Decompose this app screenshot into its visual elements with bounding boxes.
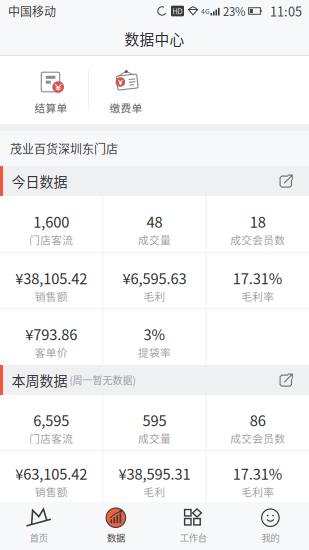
staticText: ¥63,105.42 (15, 463, 87, 484)
staticText: 门店客流 (29, 430, 73, 446)
staticText: HD (172, 6, 182, 16)
button[interactable]: 缴费单 (89, 56, 163, 124)
staticText: ¥38,105.42 (15, 267, 87, 288)
staticText: 数据 (107, 531, 125, 544)
button[interactable]: 工作台 (154, 502, 232, 550)
staticText: 门店客流 (29, 232, 73, 247)
staticText: ¥793.86 (25, 323, 77, 344)
staticText: 缴费单 (109, 100, 142, 115)
staticText: 销售额 (35, 288, 68, 304)
staticText: 成交会员数 (230, 232, 285, 247)
button[interactable]: 首页 (0, 502, 77, 550)
staticText: 结算单 (34, 100, 67, 115)
staticText: 86 (250, 409, 266, 430)
staticText: 成交会员数 (230, 430, 285, 446)
staticText: 48 (146, 211, 162, 232)
staticText: 本周数据 (11, 370, 67, 390)
staticText: 18 (250, 211, 266, 232)
staticText: 茂业百货深圳东门店 (10, 140, 118, 157)
staticText: 23% (223, 3, 245, 19)
staticText: 成交量 (138, 430, 171, 446)
staticText: 毛利率 (241, 484, 274, 499)
staticText: (周一暂无数据) (69, 373, 135, 387)
button[interactable]: 我的 (232, 502, 309, 550)
staticText: 11:05 (270, 2, 302, 20)
staticText: 中国移动 (8, 2, 56, 20)
staticText: 毛利 (143, 484, 165, 499)
staticText: 数据中心 (124, 28, 184, 49)
staticText: 毛利 (143, 288, 165, 304)
staticText: 提袋率 (138, 344, 171, 360)
staticText: 我的 (261, 531, 279, 544)
staticText: 毛利率 (241, 288, 274, 304)
staticText: 6,595 (33, 409, 69, 430)
staticText: 17.31% (233, 463, 283, 484)
staticText: 4G (201, 6, 210, 16)
staticText: ¥38,595.31 (118, 463, 190, 484)
staticText: 成交量 (138, 232, 171, 247)
staticText: 今日数据 (11, 171, 67, 191)
staticText: 595 (142, 409, 166, 430)
staticText: 首页 (30, 531, 48, 544)
staticText: 3% (143, 323, 165, 344)
button[interactable]: 分享 (271, 166, 301, 196)
staticText: ¥6,595.63 (122, 267, 186, 288)
staticText: 销售额 (35, 484, 68, 499)
button[interactable]: 分享 (271, 365, 301, 395)
staticText: 1,600 (33, 211, 69, 232)
button[interactable]: 数据 (77, 502, 154, 550)
button[interactable]: 结算单 (14, 56, 88, 124)
staticText: 客单价 (35, 344, 68, 360)
staticText: 17.31% (233, 267, 283, 288)
staticText: 工作台 (180, 531, 207, 544)
